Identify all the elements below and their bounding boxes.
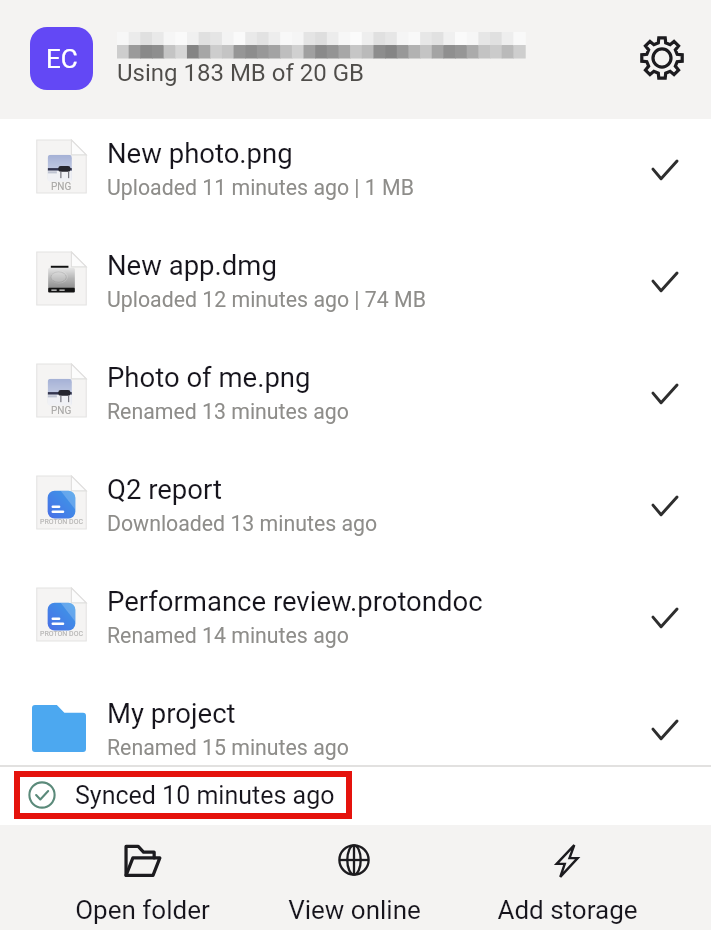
- staticText: Synced 10 minutes ago: [75, 781, 335, 810]
- staticText: Renamed 14 minutes ago: [107, 623, 349, 648]
- button[interactable]: Open folder: [37, 825, 247, 930]
- staticText: Uploaded 12 minutes ago | 74 MB: [107, 287, 426, 312]
- staticText: My project: [107, 697, 236, 729]
- staticText: Uploaded 11 minutes ago | 1 MB: [107, 175, 414, 200]
- staticText: Downloaded 13 minutes ago: [107, 511, 378, 536]
- staticText: Open folder: [75, 895, 210, 925]
- button[interactable]: My project: [0, 679, 711, 766]
- staticText: PNG: [51, 181, 72, 193]
- staticText: EC: [46, 44, 78, 74]
- staticText: PROTON DOC: [40, 518, 84, 526]
- button[interactable]: PNG: [0, 119, 711, 231]
- staticText: Renamed 15 minutes ago: [107, 735, 349, 760]
- button[interactable]: PNG: [0, 343, 711, 455]
- staticText: Q2 report: [107, 473, 222, 505]
- button[interactable]: Settings: [634, 30, 689, 85]
- button[interactable]: EC: [30, 27, 93, 90]
- staticText: Performance review.protondoc: [107, 585, 483, 617]
- button[interactable]: PROTON DOC: [0, 455, 711, 567]
- staticText: Photo of me.png: [107, 361, 311, 393]
- staticText: New app.dmg: [107, 249, 277, 281]
- button[interactable]: PROTON DOC: [0, 567, 711, 679]
- staticText: PROTON DOC: [40, 630, 84, 638]
- staticText: Add storage: [497, 895, 638, 925]
- button[interactable]: Add storage: [462, 825, 672, 930]
- staticText: New photo.png: [107, 137, 293, 169]
- staticText: PNG: [51, 405, 72, 417]
- staticText: View online: [288, 895, 421, 925]
- button[interactable]: Synced 10 minutes ago: [28, 778, 335, 812]
- button[interactable]: New app.dmg: [0, 231, 711, 343]
- staticText: Using 183 MB of 20 GB: [117, 59, 364, 87]
- staticText: Renamed 13 minutes ago: [107, 399, 349, 424]
- button[interactable]: View online: [249, 825, 459, 930]
